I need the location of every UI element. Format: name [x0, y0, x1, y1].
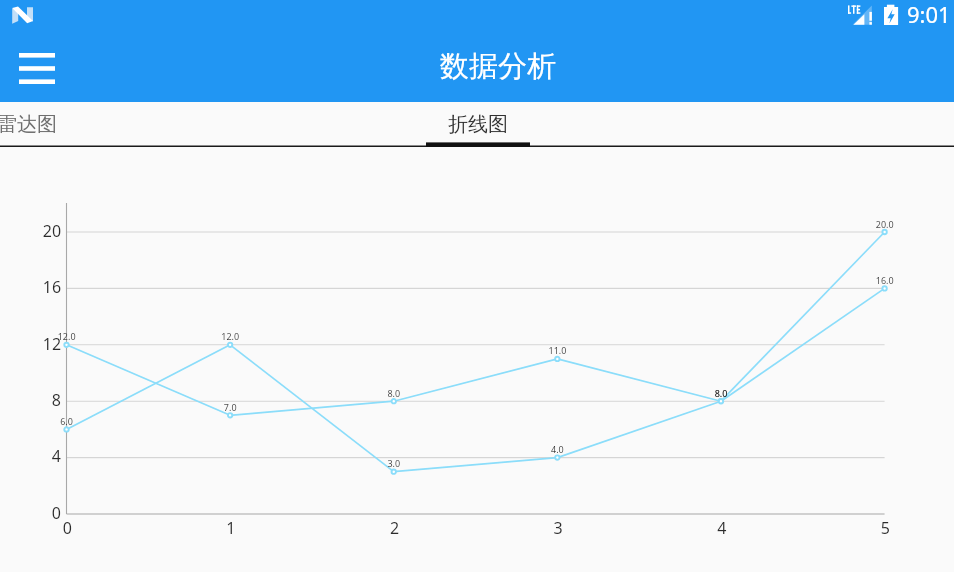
button[interactable]: 雷达图 [0, 102, 79, 147]
staticText: 数据分析 [440, 48, 556, 85]
button[interactable]: Open navigation menu [6, 35, 68, 97]
staticText: 雷达图 [0, 112, 57, 137]
staticText: 9:01 [907, 0, 951, 29]
staticText: 折线图 [448, 112, 508, 137]
button[interactable]: 折线图 [426, 102, 530, 147]
